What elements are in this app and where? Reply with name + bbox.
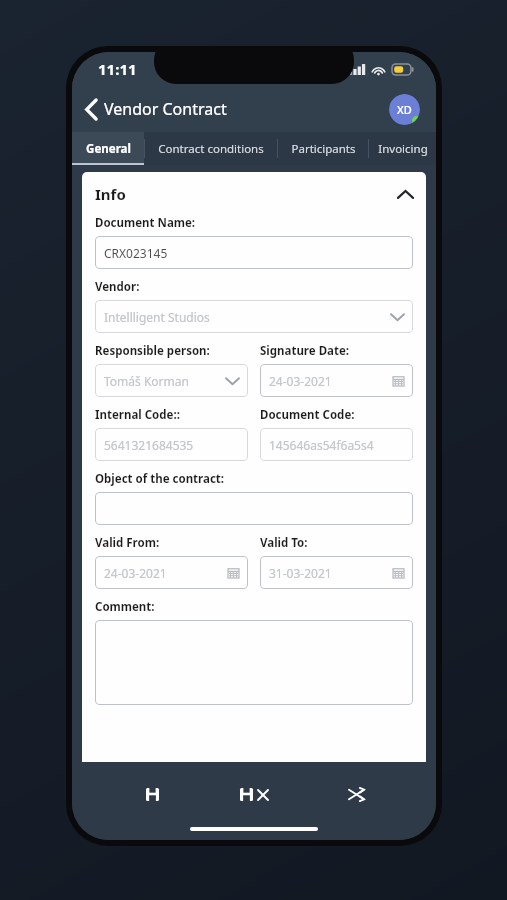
staticText: Document Name:	[95, 215, 196, 231]
button[interactable]: Intellligent Studios	[95, 300, 413, 333]
button[interactable]: Tomáš Korman	[95, 364, 248, 397]
button[interactable]: 145646as54f6a5s4	[260, 428, 413, 461]
button[interactable]: Info	[95, 184, 413, 204]
staticText: 24-03-2021	[104, 565, 228, 581]
staticText: Responsible person:	[95, 343, 210, 359]
button[interactable]: Save	[130, 772, 174, 816]
staticText: 11:11	[98, 59, 137, 79]
staticText: CRX023145	[104, 245, 404, 261]
button[interactable]: Shuffle	[334, 772, 378, 816]
staticText: Info	[95, 184, 126, 204]
button[interactable]: Vendor Contract	[80, 94, 233, 124]
staticText: Document Code:	[260, 407, 355, 423]
staticText: Invoicing	[378, 141, 428, 157]
staticText: 5641321684535	[104, 437, 239, 453]
button[interactable]: CRX023145	[95, 236, 413, 269]
staticText: XD	[397, 102, 412, 117]
staticText: 145646as54f6a5s4	[269, 437, 404, 453]
staticText: Internal Code::	[95, 407, 180, 423]
staticText: Valid From:	[95, 535, 160, 551]
button[interactable]: Invoicing	[369, 132, 436, 165]
button[interactable]: 31-03-2021	[260, 556, 413, 589]
staticText: 24-03-2021	[269, 373, 393, 389]
button[interactable]: 5641321684535	[95, 428, 248, 461]
staticText: 31-03-2021	[269, 565, 393, 581]
button[interactable]	[95, 620, 413, 705]
staticText: Vendor Contract	[104, 98, 227, 120]
button[interactable]: 24-03-2021	[95, 556, 248, 589]
staticText: Comment:	[95, 599, 155, 615]
staticText: Signature Date:	[260, 343, 350, 359]
button[interactable]: Contract conditions	[145, 132, 277, 165]
button[interactable]: Profile	[389, 94, 420, 125]
button[interactable]: General	[72, 132, 144, 165]
staticText: Intellligent Studios	[104, 309, 391, 325]
staticText: Contract conditions	[158, 141, 264, 157]
staticText: Vendor:	[95, 279, 140, 295]
button[interactable]: 24-03-2021	[260, 364, 413, 397]
staticText: Participants	[291, 141, 356, 157]
staticText: Object of the contract:	[95, 471, 225, 487]
staticText: Valid To:	[260, 535, 308, 551]
button[interactable]: Participants	[278, 132, 368, 165]
staticText: General	[86, 141, 131, 157]
staticText: Tomáš Korman	[104, 373, 226, 389]
button[interactable]	[95, 492, 413, 525]
button[interactable]: Save and close	[232, 777, 276, 812]
